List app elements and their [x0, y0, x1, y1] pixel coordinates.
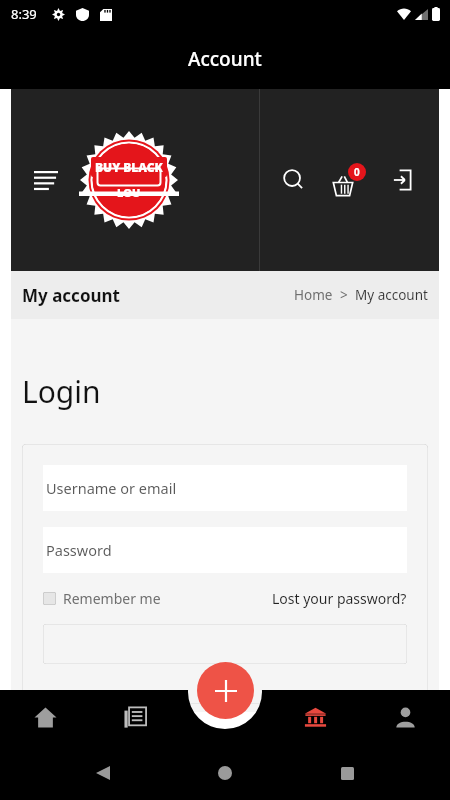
- button[interactable]: Home: [0, 690, 90, 745]
- staticText: 0: [354, 165, 360, 179]
- button[interactable]: Search: [277, 163, 311, 197]
- staticText: My account: [22, 284, 120, 307]
- staticText: Lost your password?: [272, 589, 407, 608]
- staticText: Account: [188, 46, 262, 72]
- staticText: Remember me: [63, 589, 161, 608]
- button[interactable]: Home: [294, 286, 333, 304]
- button[interactable]: Home: [206, 754, 244, 792]
- button[interactable]: Back: [84, 754, 122, 792]
- button[interactable]: Recents: [328, 754, 366, 792]
- staticText: 8:39: [11, 5, 37, 23]
- button[interactable]: Remember me: [43, 589, 161, 608]
- button[interactable]: Articles: [90, 690, 180, 745]
- button[interactable]: Cart, 0 items: [329, 160, 369, 200]
- staticText: My account: [355, 286, 428, 304]
- staticText: Home: [294, 286, 333, 304]
- staticText: Username or email: [46, 478, 177, 498]
- button[interactable]: Password: [43, 527, 407, 573]
- button[interactable]: Username or email: [43, 465, 407, 511]
- button[interactable]: Business: [270, 690, 360, 745]
- staticText: BUY BLACK: [95, 159, 163, 175]
- button[interactable]: [43, 624, 407, 664]
- button[interactable]: Login: [387, 163, 421, 197]
- staticText: Login: [22, 371, 101, 412]
- staticText: LOU: [117, 185, 141, 200]
- staticText: >: [333, 286, 355, 304]
- button[interactable]: Add: [197, 662, 254, 719]
- button[interactable]: Lost your password?: [272, 589, 407, 608]
- staticText: Password: [46, 540, 112, 560]
- button[interactable]: Profile: [360, 690, 450, 745]
- button[interactable]: Menu: [29, 163, 63, 197]
